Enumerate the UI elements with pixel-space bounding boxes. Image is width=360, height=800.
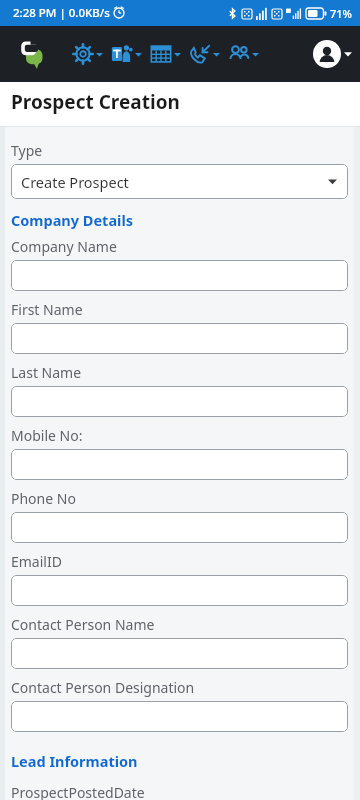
button[interactable]: Calendar	[146, 37, 185, 71]
button[interactable]: Teams	[107, 37, 146, 71]
staticText: Last Name	[11, 363, 82, 382]
staticText: EmailID	[11, 552, 62, 571]
staticText: Phone No	[11, 489, 76, 508]
button[interactable]	[11, 260, 348, 291]
staticText: First Name	[11, 300, 83, 319]
staticText: 71%	[330, 6, 352, 21]
button[interactable]	[11, 575, 348, 606]
staticText: Contact Person Name	[11, 615, 155, 634]
button[interactable]	[11, 512, 348, 543]
staticText: 2:28 PM | 0.0KB/s	[13, 5, 110, 21]
button[interactable]	[11, 701, 348, 732]
staticText: ProspectPostedDate	[11, 783, 145, 800]
button[interactable]	[11, 449, 348, 480]
button[interactable]: Calls	[185, 37, 224, 71]
button[interactable]	[11, 638, 348, 669]
button[interactable]: Account	[313, 40, 352, 68]
staticText: Prospect Creation	[11, 89, 180, 115]
staticText: Create Prospect	[21, 172, 129, 192]
button[interactable]	[11, 386, 348, 417]
staticText: Lead Information	[11, 751, 138, 771]
button[interactable]: Create Prospect	[11, 164, 348, 199]
button[interactable]: Settings	[68, 37, 107, 71]
staticText: Company Name	[11, 237, 117, 256]
button[interactable]: Contacts	[224, 37, 263, 71]
staticText: Contact Person Designation	[11, 678, 195, 697]
staticText: Company Details	[11, 210, 134, 230]
button[interactable]	[11, 323, 348, 354]
staticText: Type	[11, 141, 43, 160]
staticText: Mobile No:	[11, 426, 83, 445]
button[interactable]: Home	[12, 34, 52, 74]
